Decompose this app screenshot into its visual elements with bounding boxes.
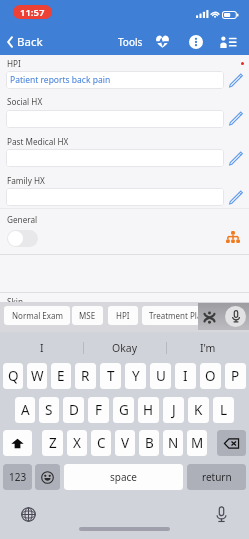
- staticText: 123: [9, 470, 27, 484]
- button[interactable]: return: [187, 464, 246, 490]
- staticText: B: [145, 434, 154, 452]
- button[interactable]: HPI: [108, 306, 138, 325]
- button[interactable]: P: [225, 363, 246, 389]
- staticText: D: [69, 401, 79, 419]
- staticText: I: [183, 367, 188, 385]
- staticText: HPI: [116, 310, 130, 321]
- button[interactable]: I: [0, 332, 83, 363]
- button[interactable]: Edit Family HX: [228, 189, 244, 205]
- staticText: H: [143, 401, 154, 419]
- staticText: S: [45, 401, 53, 419]
- staticText: Y: [132, 367, 140, 385]
- button[interactable]: S: [39, 397, 59, 423]
- staticText: Family HX: [7, 175, 45, 186]
- staticText: Skin: [7, 296, 24, 307]
- button[interactable]: V: [115, 430, 135, 456]
- staticText: U: [156, 367, 166, 385]
- staticText: Normal Exam: [12, 310, 63, 321]
- button[interactable]: Switch keyboard: [21, 507, 36, 522]
- button[interactable]: W: [27, 363, 47, 389]
- staticText: Q: [8, 367, 19, 385]
- staticText: Past Medical HX: [7, 136, 69, 147]
- button[interactable]: Edit HPI: [228, 72, 244, 88]
- staticText: A: [21, 401, 30, 419]
- staticText: Z: [49, 434, 57, 452]
- staticText: N: [168, 434, 179, 452]
- button[interactable]: space: [64, 464, 183, 490]
- staticText: General: [7, 214, 38, 225]
- staticText: space: [110, 470, 137, 484]
- button[interactable]: Dictate: [225, 306, 246, 327]
- button[interactable]: Backspace: [217, 430, 246, 456]
- staticText: F: [95, 401, 103, 419]
- button[interactable]: F: [88, 397, 109, 423]
- button[interactable]: I'm: [167, 332, 249, 363]
- button[interactable]: Y: [125, 363, 146, 389]
- button[interactable]: N: [163, 430, 183, 456]
- button[interactable]: Hide keyboard: [201, 309, 217, 325]
- button[interactable]: G: [113, 397, 134, 423]
- button[interactable]: A: [15, 397, 35, 423]
- button[interactable]: Patient reports back pain: [6, 71, 224, 89]
- button[interactable]: General toggle: [7, 230, 38, 247]
- button[interactable]: O: [200, 363, 221, 389]
- button[interactable]: M: [187, 430, 207, 456]
- staticText: T: [107, 367, 115, 385]
- button[interactable]: [6, 110, 224, 128]
- button[interactable]: MSE: [72, 306, 103, 325]
- button[interactable]: Edit Past Medical HX: [228, 150, 244, 166]
- button[interactable]: Edit Social HX: [228, 110, 244, 126]
- button[interactable]: X: [67, 430, 87, 456]
- button[interactable]: Okay: [84, 332, 166, 363]
- staticText: Tools: [118, 35, 143, 49]
- button[interactable]: Vitals: [152, 31, 173, 52]
- staticText: R: [81, 367, 90, 385]
- staticText: I'm: [200, 341, 216, 355]
- staticText: Okay: [112, 341, 138, 355]
- button[interactable]: D: [63, 397, 84, 423]
- button[interactable]: Z: [42, 430, 63, 456]
- button[interactable]: L: [213, 397, 234, 423]
- button[interactable]: [6, 149, 224, 167]
- staticText: J: [172, 401, 176, 419]
- staticText: C: [97, 434, 106, 452]
- staticText: Social HX: [7, 96, 43, 107]
- staticText: V: [121, 434, 130, 452]
- button[interactable]: B: [139, 430, 159, 456]
- button[interactable]: Emoji: [35, 464, 60, 490]
- staticText: return: [202, 470, 232, 484]
- button[interactable]: U: [150, 363, 171, 389]
- button[interactable]: More information: [185, 31, 206, 52]
- button[interactable]: Q: [3, 363, 23, 389]
- button[interactable]: Shift: [3, 430, 32, 456]
- staticText: M: [191, 434, 204, 452]
- button[interactable]: 123: [3, 464, 32, 490]
- button[interactable]: I: [175, 363, 196, 389]
- button[interactable]: [6, 188, 224, 206]
- button[interactable]: Treatment Plan: [142, 306, 212, 325]
- button[interactable]: Tools: [114, 31, 147, 53]
- staticText: Back: [17, 34, 43, 50]
- staticText: Patient reports back pain: [10, 74, 111, 86]
- button[interactable]: Normal Exam: [4, 306, 70, 325]
- staticText: X: [73, 434, 81, 452]
- staticText: G: [119, 401, 129, 419]
- button[interactable]: J: [163, 397, 184, 423]
- staticText: L: [220, 401, 228, 419]
- staticText: I: [40, 341, 44, 355]
- button[interactable]: R: [75, 363, 96, 389]
- button[interactable]: Patient details: [218, 31, 239, 52]
- button[interactable]: C: [91, 430, 111, 456]
- staticText: K: [194, 401, 203, 419]
- staticText: HPI: [7, 58, 21, 69]
- button[interactable]: T: [100, 363, 121, 389]
- button[interactable]: K: [188, 397, 209, 423]
- staticText: W: [31, 367, 44, 385]
- button[interactable]: E: [51, 363, 71, 389]
- button[interactable]: H: [138, 397, 159, 423]
- staticText: MSE: [79, 310, 96, 321]
- button[interactable]: Template tree: [226, 231, 240, 243]
- button[interactable]: Dictation: [215, 506, 228, 523]
- staticText: O: [205, 367, 216, 385]
- button[interactable]: Back: [0, 29, 50, 55]
